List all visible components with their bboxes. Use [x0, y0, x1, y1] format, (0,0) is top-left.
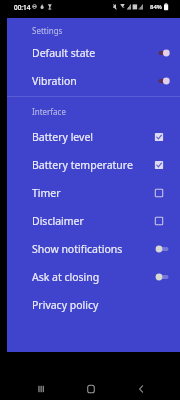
button[interactable] — [7, 182, 180, 210]
button[interactable] — [7, 154, 180, 182]
staticText: Interface — [32, 106, 66, 117]
staticText: Battery level — [32, 130, 94, 144]
staticText: Timer — [32, 186, 61, 200]
staticText: 00:14 — [14, 3, 31, 12]
button[interactable] — [7, 70, 180, 98]
button[interactable]: Back — [126, 374, 155, 400]
button[interactable] — [7, 210, 180, 238]
button[interactable] — [7, 238, 180, 266]
staticText: Privacy policy — [32, 298, 99, 312]
staticText: Disclaimer — [32, 214, 84, 228]
staticText: Default state — [32, 46, 96, 60]
staticText: Settings — [32, 25, 63, 36]
staticText: Ask at closing — [32, 270, 100, 284]
button[interactable] — [7, 266, 180, 294]
button[interactable] — [7, 294, 180, 322]
staticText: Battery temperature — [32, 158, 133, 172]
button[interactable]: Home — [76, 374, 105, 400]
button[interactable] — [7, 42, 180, 70]
button[interactable]: Recent apps — [26, 374, 55, 400]
staticText: 84% — [150, 3, 162, 11]
staticText: Vibration — [32, 74, 77, 88]
staticText: Show notifications — [32, 242, 123, 256]
button[interactable] — [7, 126, 180, 154]
